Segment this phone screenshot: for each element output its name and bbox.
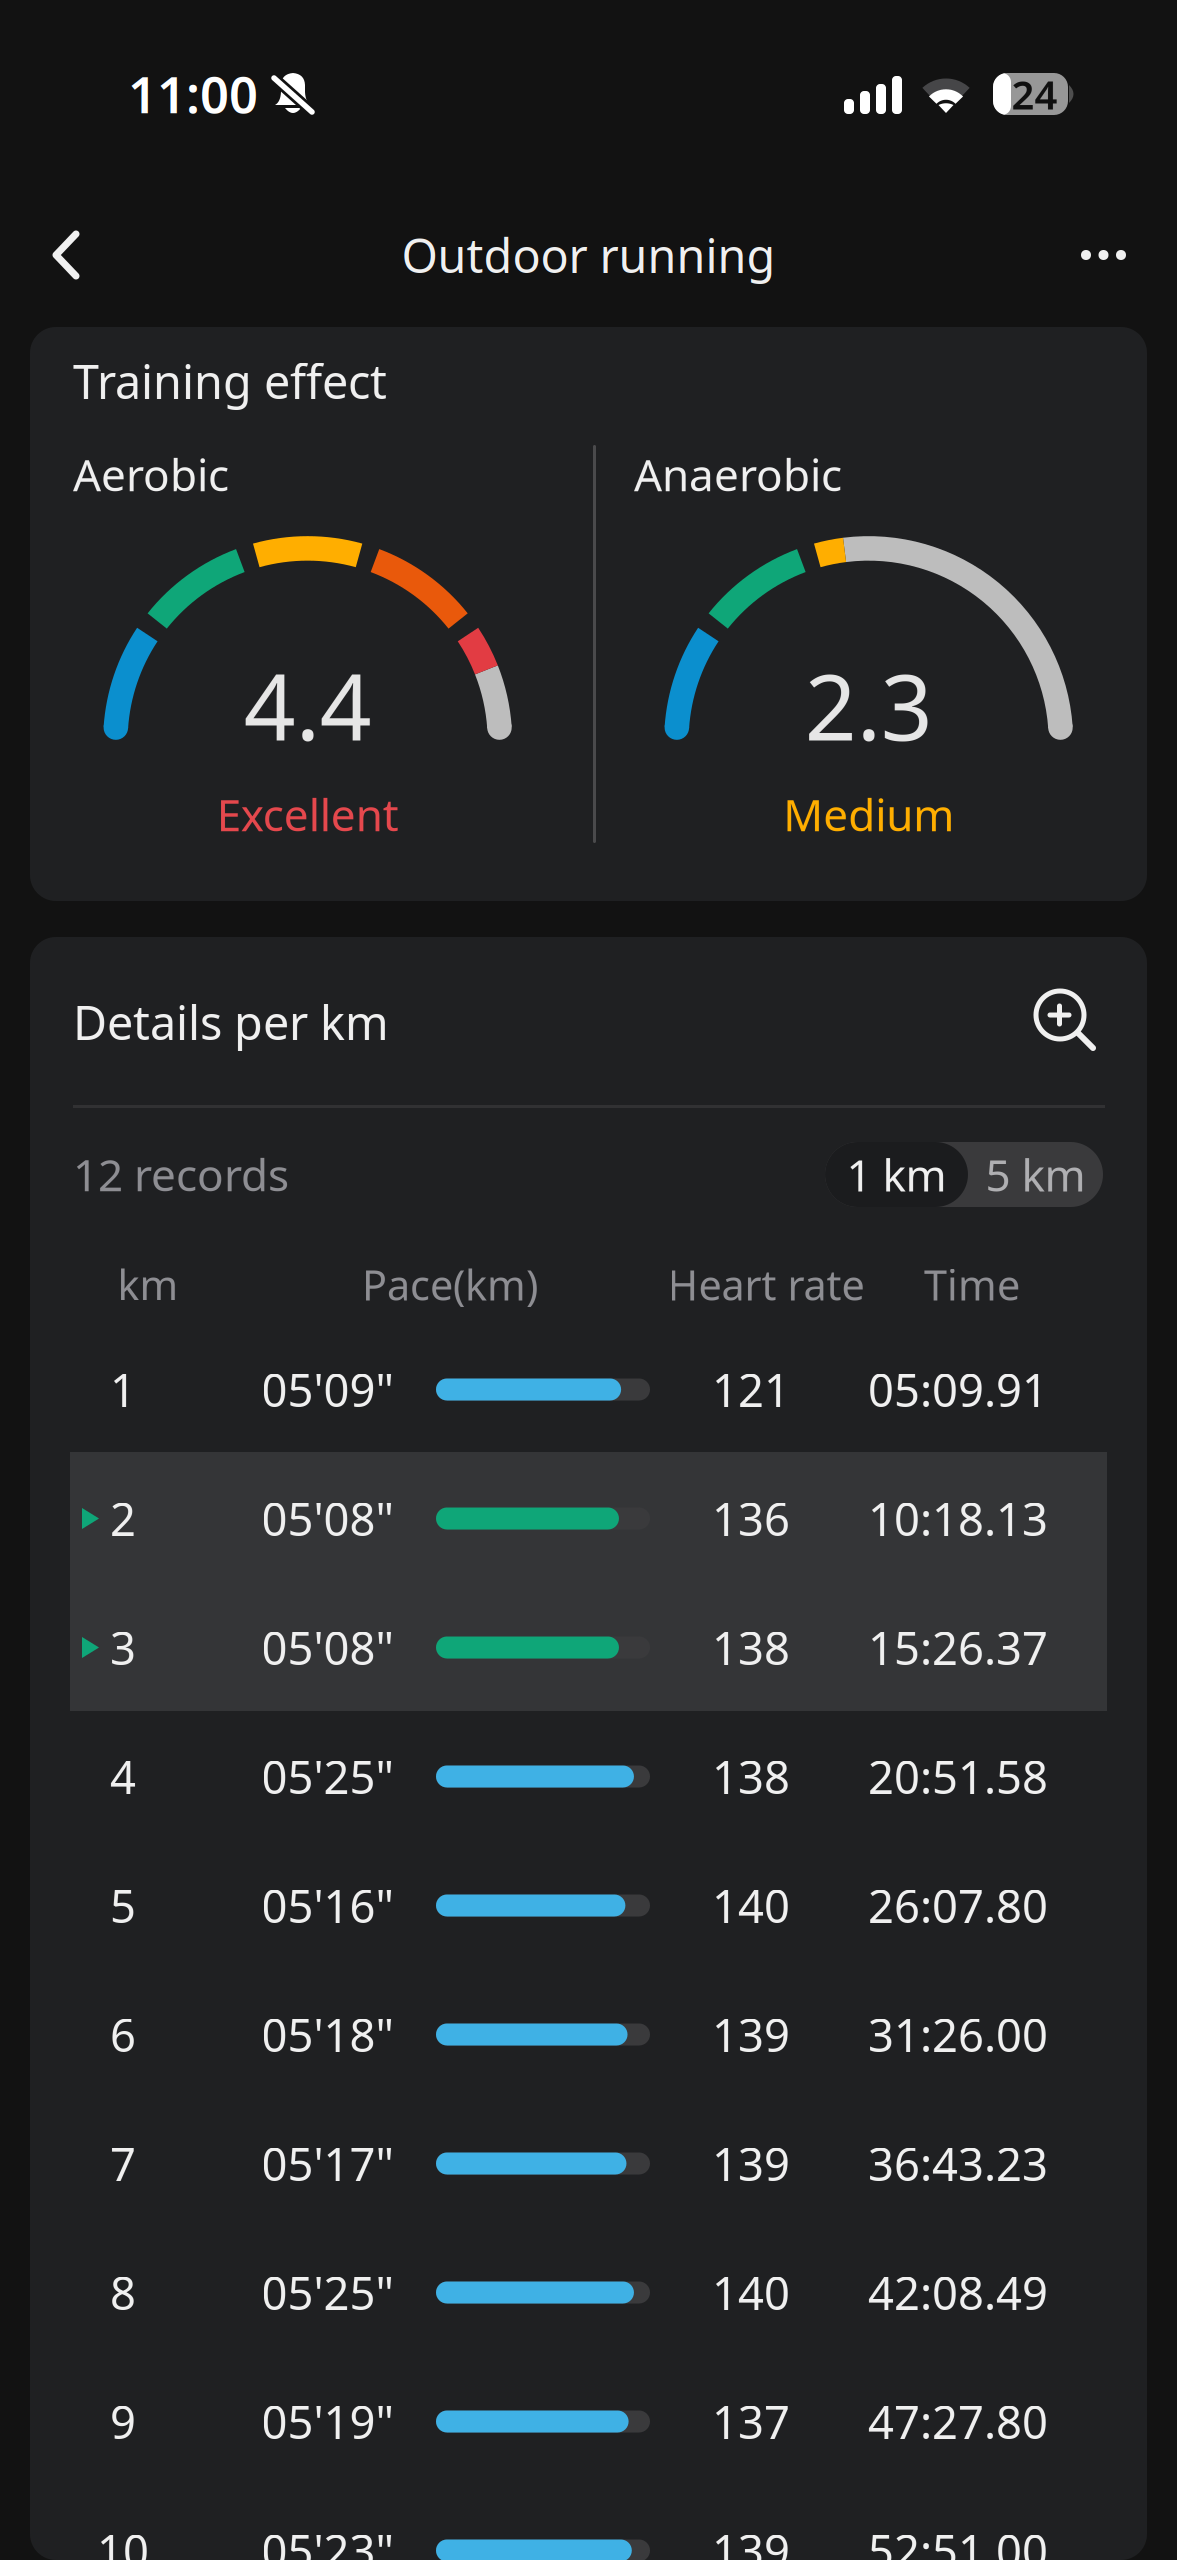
staticText: 139 [712, 2133, 790, 2194]
staticText: Medium [783, 785, 954, 843]
staticText: 36:43.23 [868, 2133, 1048, 2194]
staticText: km [117, 1257, 178, 1312]
staticText: Outdoor running [401, 224, 775, 286]
staticText: Heart rate [667, 1257, 864, 1312]
button[interactable]: 3 [30, 1583, 1147, 1712]
staticText: 4.4 [244, 645, 372, 765]
staticText: 12 records [73, 1145, 289, 1203]
button[interactable]: More options [1047, 202, 1160, 308]
staticText: Excellent [217, 785, 399, 843]
staticText: 1 km [846, 1145, 946, 1204]
staticText: 138 [712, 1746, 790, 1807]
staticText: 5 km [985, 1145, 1085, 1204]
staticText: Training effect [73, 350, 387, 412]
staticText: 15:26.37 [868, 1617, 1048, 1678]
staticText: Anaerobic [634, 445, 842, 503]
staticText: 138 [712, 1617, 790, 1678]
staticText: 140 [712, 2262, 790, 2323]
staticText: 137 [712, 2391, 790, 2452]
button[interactable]: 5 [30, 1841, 1147, 1970]
button[interactable]: 9 [30, 2357, 1147, 2486]
staticText: 139 [712, 2004, 790, 2065]
staticText: 136 [712, 1488, 790, 1549]
staticText: 2.3 [805, 645, 933, 765]
staticText: 05'08" [261, 1617, 393, 1678]
staticText: Aerobic [73, 445, 229, 503]
staticText: 05'16" [261, 1875, 393, 1936]
staticText: 05'09" [261, 1359, 393, 1420]
button[interactable]: 7 [30, 2099, 1147, 2228]
button[interactable]: 10 [30, 2486, 1147, 2560]
button[interactable]: 8 [30, 2228, 1147, 2357]
staticText: Pace(km) [362, 1257, 538, 1312]
button[interactable]: 4 [30, 1712, 1147, 1841]
button[interactable]: 5 km [968, 1142, 1103, 1207]
staticText: 4 [110, 1746, 136, 1807]
button[interactable]: Back [21, 202, 111, 308]
staticText: 140 [712, 1875, 790, 1936]
staticText: 10 [97, 2520, 149, 2560]
staticText: 20:51.58 [868, 1746, 1048, 1807]
staticText: 47:27.80 [868, 2391, 1048, 2452]
staticText: 10:18.13 [868, 1488, 1048, 1549]
button[interactable]: 1 [30, 1325, 1147, 1454]
staticText: 31:26.00 [868, 2004, 1048, 2065]
button[interactable]: 6 [30, 1970, 1147, 2099]
button[interactable]: 2 [30, 1454, 1147, 1583]
staticText: 6 [110, 2004, 136, 2065]
staticText: 05'08" [261, 1488, 393, 1549]
staticText: 05'25" [261, 2262, 393, 2323]
button[interactable]: Zoom in [1030, 985, 1090, 1045]
staticText: 05'17" [261, 2133, 393, 2194]
staticText: 5 [110, 1875, 136, 1936]
button[interactable]: Details per km [73, 995, 473, 1049]
staticText: 05'25" [261, 1746, 393, 1807]
staticText: Time [924, 1257, 1020, 1312]
staticText: 139 [712, 2520, 790, 2560]
staticText: 9 [110, 2391, 136, 2452]
staticText: 3 [110, 1617, 136, 1678]
staticText: Details per km [73, 991, 389, 1053]
staticText: 8 [110, 2262, 136, 2323]
button[interactable]: 1 km [825, 1142, 968, 1207]
staticText: 11:00 [128, 60, 258, 127]
staticText: 2 [110, 1488, 136, 1549]
staticText: 52:51.00 [868, 2520, 1048, 2560]
staticText: 26:07.80 [868, 1875, 1048, 1936]
staticText: 05'19" [261, 2391, 393, 2452]
staticText: 05:09.91 [868, 1359, 1048, 1420]
staticText: 05'18" [261, 2004, 393, 2065]
staticText: 7 [110, 2133, 136, 2194]
staticText: 1 [110, 1359, 136, 1420]
staticText: 24 [1011, 67, 1057, 120]
staticText: 42:08.49 [868, 2262, 1048, 2323]
staticText: 121 [712, 1359, 790, 1420]
staticText: 05'23" [261, 2520, 393, 2560]
